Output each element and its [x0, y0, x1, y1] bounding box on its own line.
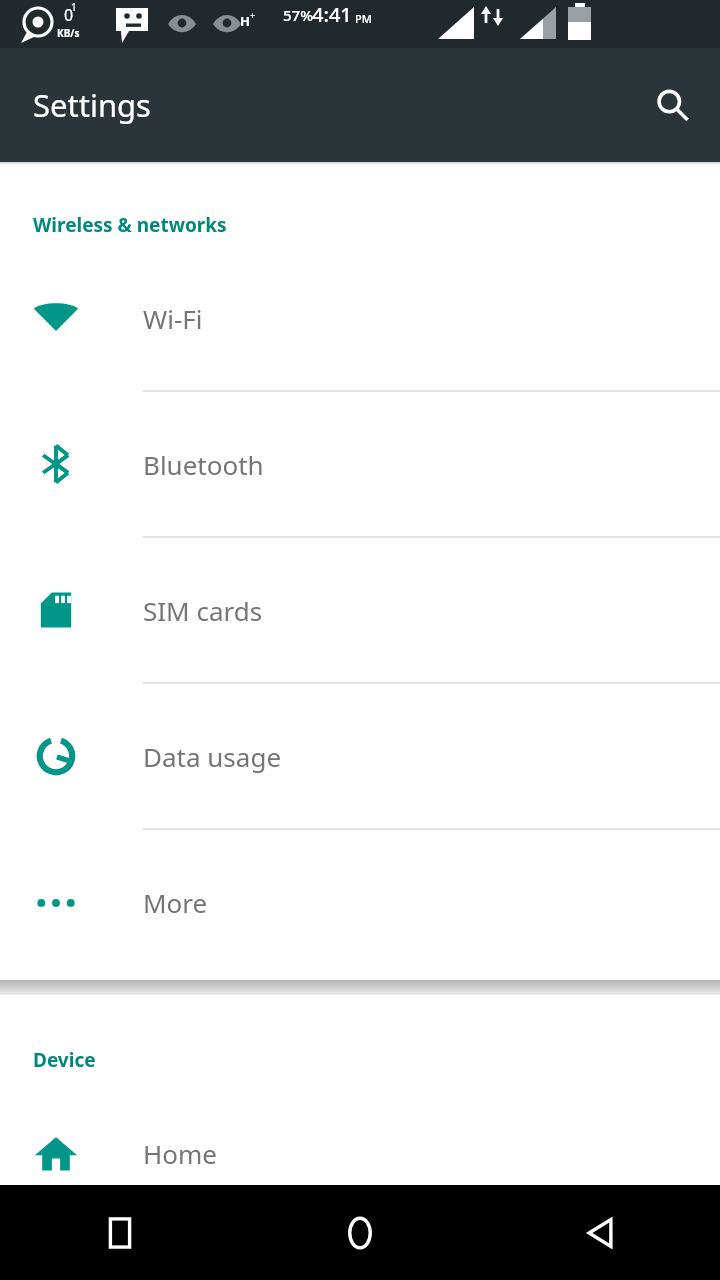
staticText: 4:41 — [312, 1, 352, 28]
button[interactable]: Wi-Fi — [0, 246, 720, 392]
staticText: Home — [143, 1136, 217, 1171]
staticText: Wireless & networks — [33, 212, 227, 238]
button[interactable]: Search — [644, 77, 700, 133]
staticText: Settings — [33, 84, 151, 126]
staticText: 0 — [64, 4, 74, 26]
staticText: + — [250, 9, 256, 21]
button[interactable]: Recents — [0, 1185, 240, 1280]
staticText: Data usage — [143, 739, 282, 774]
staticText: 57% — [283, 5, 313, 25]
button[interactable]: Back — [480, 1185, 720, 1280]
staticText: Wi-Fi — [143, 301, 203, 336]
button[interactable]: SIM cards — [0, 538, 720, 684]
button[interactable]: Home — [240, 1185, 480, 1280]
staticText: KB/s — [57, 26, 80, 40]
button[interactable]: More — [0, 830, 720, 974]
button[interactable]: Bluetooth — [0, 392, 720, 538]
staticText: 1 — [71, 0, 77, 14]
button[interactable]: Data usage — [0, 684, 720, 830]
staticText: PM — [355, 11, 372, 26]
staticText: More — [143, 885, 208, 920]
staticText: SIM cards — [143, 593, 263, 628]
staticText: Device — [33, 1047, 96, 1073]
staticText: H — [240, 12, 250, 30]
staticText: Bluetooth — [143, 447, 264, 482]
button[interactable]: Home — [0, 1081, 720, 1225]
